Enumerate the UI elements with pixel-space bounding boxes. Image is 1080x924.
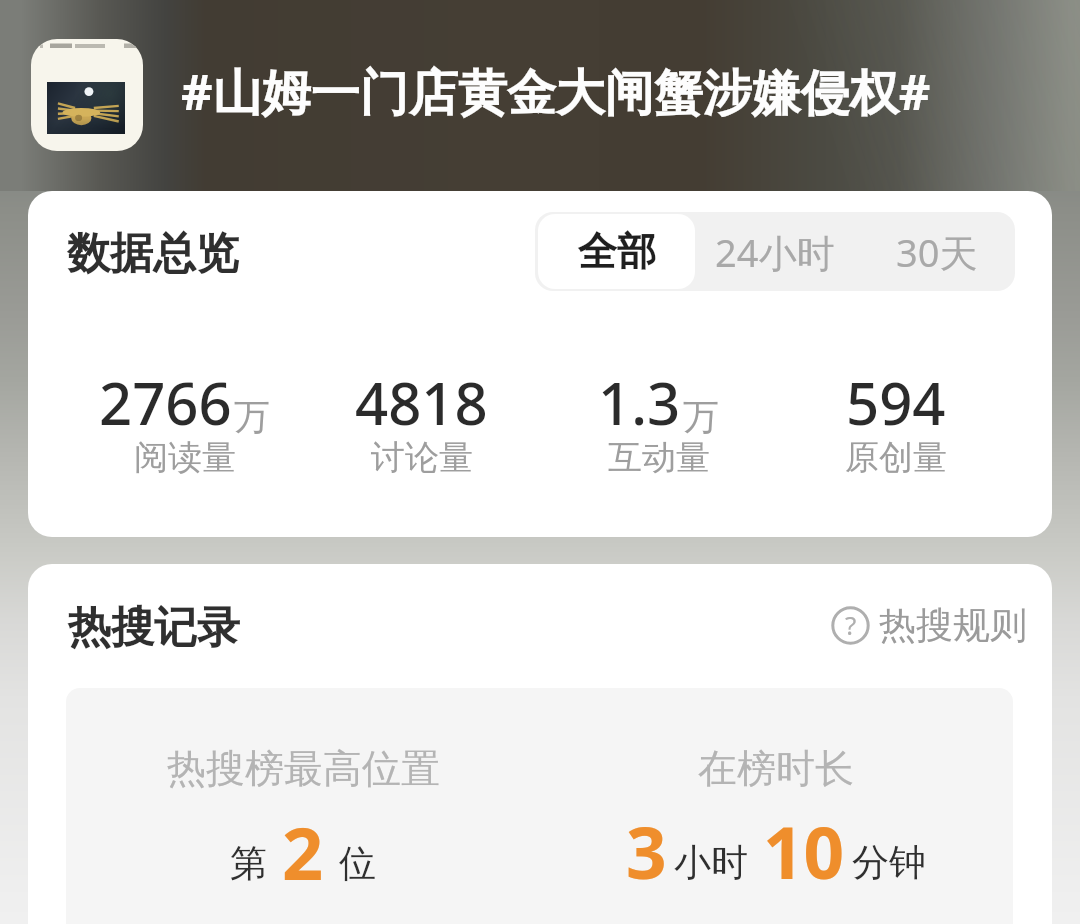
- button[interactable]: 594: [777, 363, 1014, 485]
- staticText: 热搜榜最高位置: [167, 744, 440, 793]
- button[interactable]: 24小时: [692, 212, 858, 291]
- staticText: 热搜记录: [68, 601, 240, 655]
- staticText: 4818: [355, 363, 488, 442]
- staticText: 分钟: [852, 839, 926, 886]
- button[interactable]: 4818: [303, 363, 540, 485]
- staticText: #山姆一门店黄金大闸蟹涉嫌侵权#: [181, 58, 931, 125]
- button[interactable]: 全部: [538, 214, 695, 289]
- staticText: 10: [763, 803, 845, 900]
- staticText: 第: [230, 840, 267, 887]
- button[interactable]: 30天: [858, 212, 1015, 291]
- staticText: 全部: [578, 227, 656, 276]
- staticText: 数据总览: [67, 227, 239, 281]
- button[interactable]: 1.3: [540, 363, 777, 485]
- staticText: 万: [234, 394, 270, 439]
- staticText: 小时: [674, 839, 748, 886]
- staticText: 30天: [896, 226, 978, 278]
- staticText: 2: [282, 803, 324, 901]
- staticText: 万: [683, 394, 719, 439]
- button[interactable]: ?: [831, 601, 1027, 649]
- button[interactable]: 2766: [66, 363, 303, 485]
- button[interactable]: Topic image: [31, 39, 143, 151]
- staticText: 阅读量: [134, 436, 236, 479]
- staticText: 1.3: [598, 363, 681, 442]
- staticText: 3: [626, 803, 667, 900]
- staticText: 讨论量: [371, 436, 473, 479]
- staticText: 互动量: [608, 436, 710, 479]
- staticText: 原创量: [845, 436, 947, 479]
- staticText: 在榜时长: [698, 744, 854, 793]
- staticText: 2766: [99, 363, 232, 442]
- staticText: ?: [845, 607, 857, 642]
- staticText: 热搜规则: [879, 602, 1027, 649]
- staticText: 24小时: [715, 226, 835, 278]
- staticText: 594: [846, 363, 946, 442]
- staticText: 位: [339, 840, 376, 887]
